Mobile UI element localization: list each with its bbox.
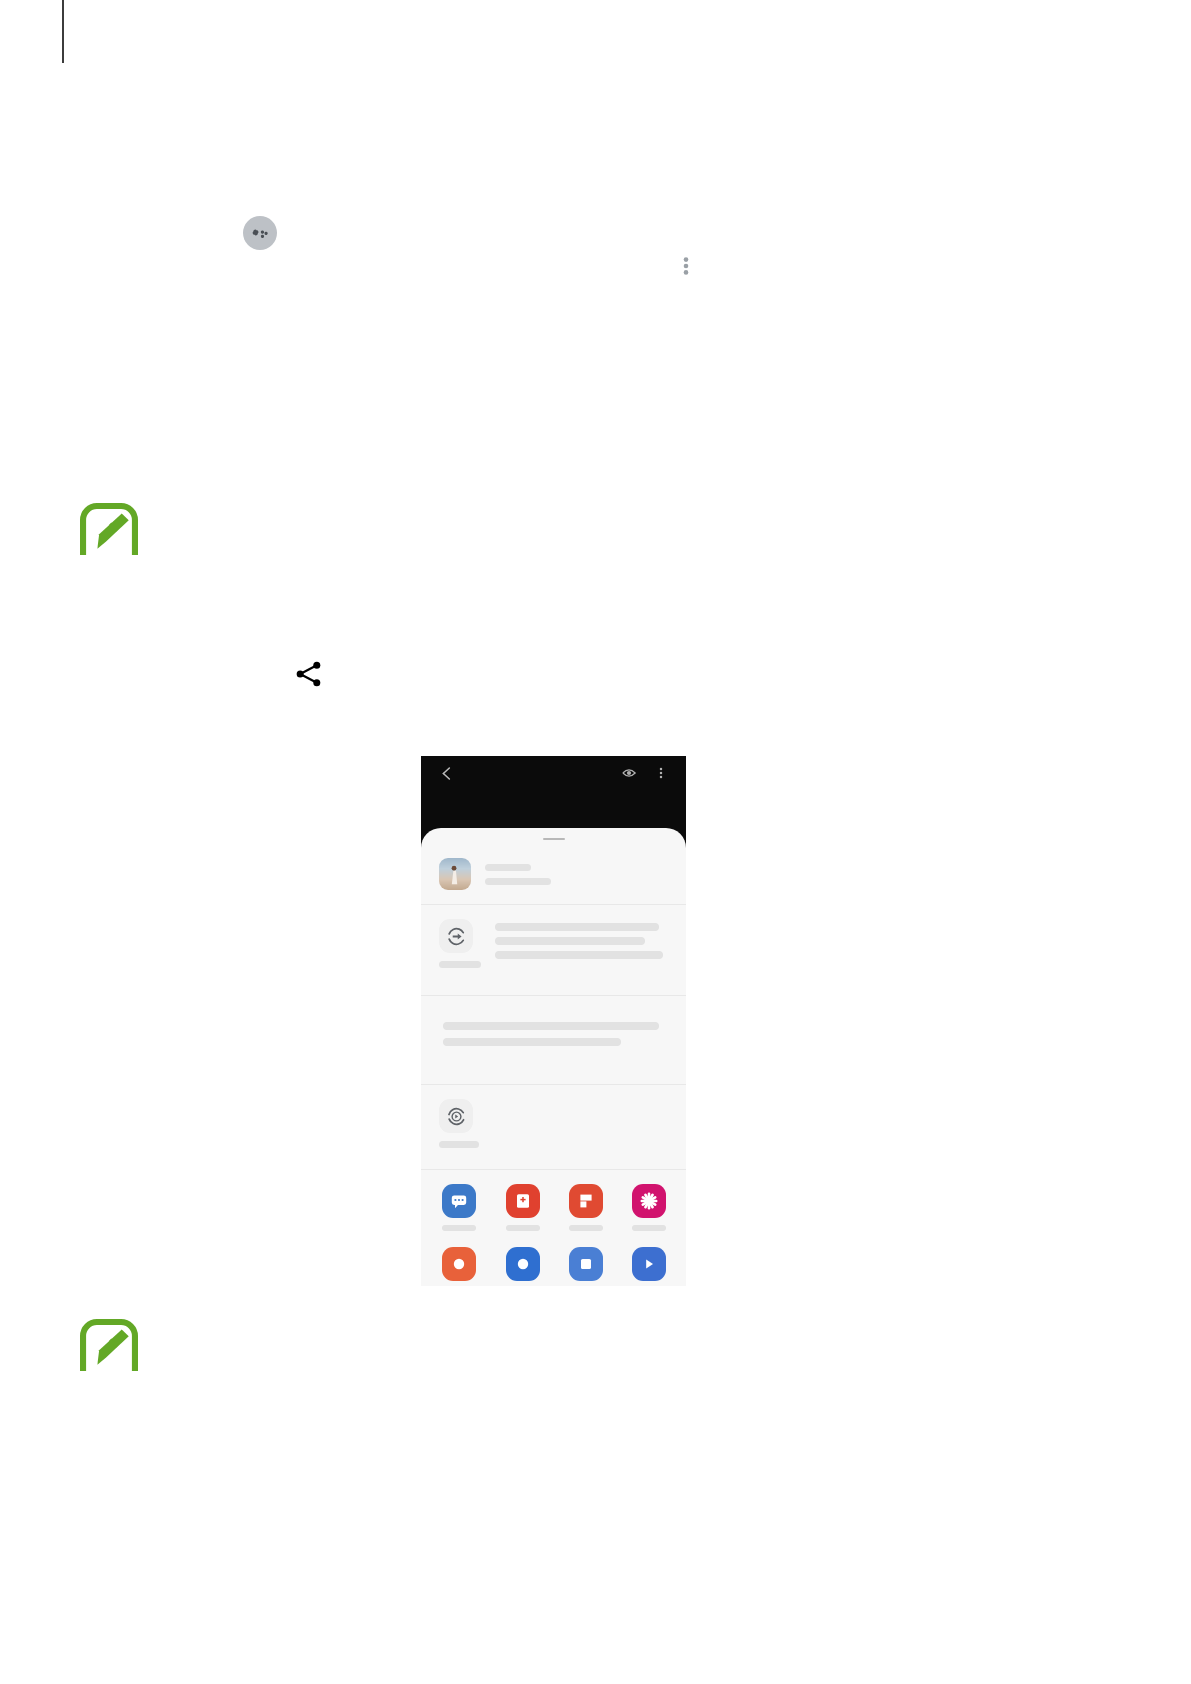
button[interactable]: More options <box>650 762 672 784</box>
button[interactable] <box>617 1182 680 1233</box>
button[interactable]: Game tools <box>243 216 277 250</box>
button[interactable]: Back <box>435 762 457 784</box>
button[interactable] <box>554 1182 617 1233</box>
button[interactable] <box>421 905 686 995</box>
button[interactable]: View details <box>618 762 640 784</box>
button[interactable] <box>617 1245 680 1283</box>
button[interactable] <box>427 1245 491 1283</box>
button[interactable] <box>491 1182 554 1233</box>
button[interactable] <box>421 996 686 1084</box>
button[interactable] <box>427 1182 491 1233</box>
button[interactable] <box>554 1245 617 1283</box>
button[interactable]: More options <box>668 248 704 284</box>
button[interactable]: Share <box>293 658 325 690</box>
button[interactable] <box>421 844 686 904</box>
button[interactable] <box>491 1245 554 1283</box>
button[interactable] <box>421 1085 686 1169</box>
